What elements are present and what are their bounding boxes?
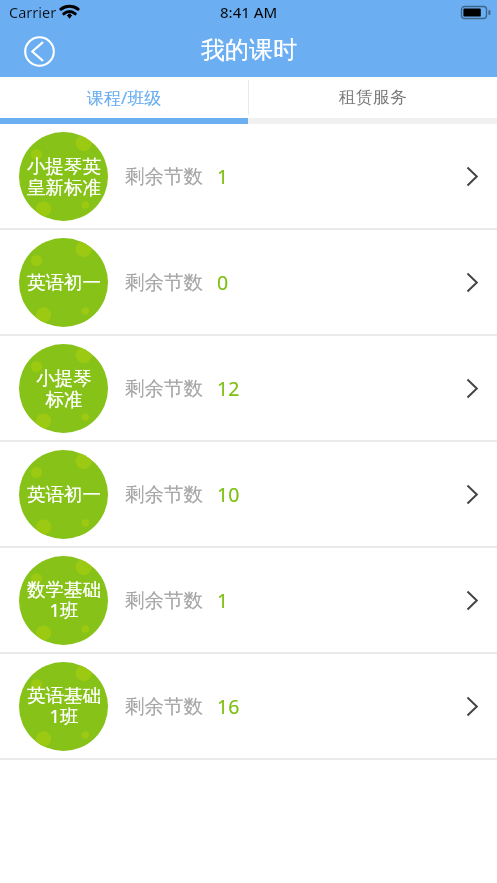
button[interactable]: 数学基础 1班 [0,548,497,652]
staticText: 我的课时 [201,35,297,65]
staticText: 0 [217,269,229,296]
button[interactable]: 英语初一 [0,230,497,334]
staticText: 8:41 AM [220,2,278,22]
staticText: 租赁服务 [339,87,407,108]
staticText: 剩余节数 [125,164,203,189]
button[interactable]: 小提琴英 皇新标准 [0,124,497,228]
staticText: 16 [217,693,240,720]
staticText: Carrier [9,2,57,22]
button[interactable]: 小提琴 标准 [0,336,497,440]
staticText: 剩余节数 [125,482,203,507]
staticText: 剩余节数 [125,376,203,401]
staticText: 课程/班级 [87,86,162,109]
button[interactable]: 课程/班级 [0,77,248,118]
staticText: 剩余节数 [125,694,203,719]
staticText: 英语初一 [27,271,101,294]
button[interactable]: 英语基础 1班 [0,654,497,758]
button[interactable]: Back [19,31,59,71]
staticText: 剩余节数 [125,270,203,295]
staticText: 小提琴 标准 [36,367,92,411]
staticText: 1 [217,587,229,614]
staticText: 英语基础 1班 [27,684,101,729]
staticText: 小提琴英 皇新标准 [27,155,101,199]
staticText: 10 [217,481,240,508]
staticText: 剩余节数 [125,588,203,613]
staticText: 12 [217,375,240,402]
button[interactable]: 租赁服务 [249,77,497,118]
staticText: 数学基础 1班 [27,578,101,623]
button[interactable]: 英语初一 [0,442,497,546]
staticText: 英语初一 [27,483,101,506]
staticText: 1 [217,163,229,190]
